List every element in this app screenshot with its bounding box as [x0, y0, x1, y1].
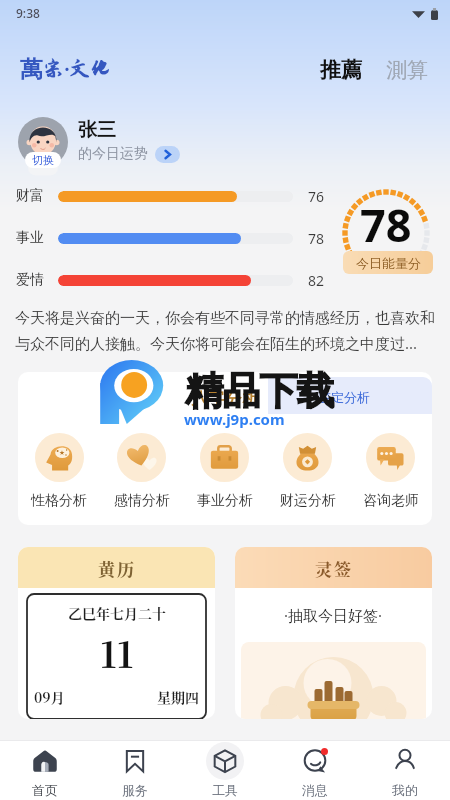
- staticText: 事业: [16, 229, 58, 247]
- button[interactable]: 灵签: [235, 547, 432, 719]
- staticText: 工具: [212, 782, 238, 798]
- staticText: 事业分析: [197, 492, 253, 510]
- staticText: 性格分析: [31, 492, 87, 510]
- button[interactable]: 黄历: [18, 547, 215, 719]
- staticText: 咨询老师: [363, 492, 419, 510]
- button[interactable]: 感情分析: [100, 433, 183, 510]
- staticText: 今日能量分: [356, 255, 421, 271]
- staticText: 我的: [392, 782, 418, 798]
- staticText: 爱情: [16, 271, 58, 289]
- staticText: www.j9p.com: [184, 409, 285, 429]
- button[interactable]: 推薦: [317, 51, 365, 89]
- staticText: 的今日运势: [78, 145, 148, 163]
- staticText: 财运分析: [280, 492, 336, 510]
- staticText: 鉴定分析: [318, 389, 370, 405]
- staticText: 78: [308, 229, 325, 248]
- button[interactable]: 測算: [383, 51, 431, 89]
- staticText: 78: [360, 194, 412, 255]
- button[interactable]: 性格分析: [18, 433, 100, 510]
- staticText: 灵签: [315, 556, 353, 580]
- staticText: 消息: [302, 782, 328, 798]
- button[interactable]: 我的: [360, 741, 450, 800]
- button[interactable]: 咨询老师: [349, 433, 432, 510]
- staticText: 82: [308, 271, 325, 290]
- staticText: 星期四: [157, 687, 199, 707]
- button[interactable]: 工具: [180, 741, 270, 800]
- staticText: 乙巳年七月二十: [68, 603, 166, 623]
- staticText: 精品下载: [186, 367, 334, 415]
- staticText: 76: [308, 187, 325, 206]
- staticText: 八字分析: [191, 389, 259, 409]
- staticText: 感情分析: [114, 492, 170, 510]
- button[interactable]: 事业分析: [183, 433, 266, 510]
- staticText: 黄历: [98, 556, 136, 580]
- staticText: 财富: [16, 187, 58, 205]
- button[interactable]: 查看今日运势: [155, 146, 180, 163]
- staticText: 切换: [32, 153, 54, 167]
- staticText: 萬宗·文化: [20, 55, 111, 84]
- button[interactable]: 切换: [18, 117, 68, 167]
- staticText: 推薦: [320, 57, 362, 83]
- button[interactable]: 财运分析: [266, 433, 349, 510]
- staticText: 09月: [34, 687, 65, 707]
- staticText: 张三: [78, 118, 116, 142]
- staticText: 首页: [32, 782, 58, 798]
- staticText: 11: [100, 627, 134, 679]
- staticText: 服务: [122, 782, 148, 798]
- button[interactable]: 服务: [90, 741, 180, 800]
- staticText: 測算: [386, 57, 428, 83]
- staticText: 9:38: [16, 5, 40, 21]
- button[interactable]: 消息: [270, 741, 360, 800]
- button[interactable]: 首页: [0, 741, 90, 800]
- staticText: 今天将是兴奋的一天，你会有些不同寻常的情感经历，也喜欢和与众不同的人接触。今天你…: [15, 309, 436, 353]
- staticText: ·抽取今日好签·: [284, 605, 383, 625]
